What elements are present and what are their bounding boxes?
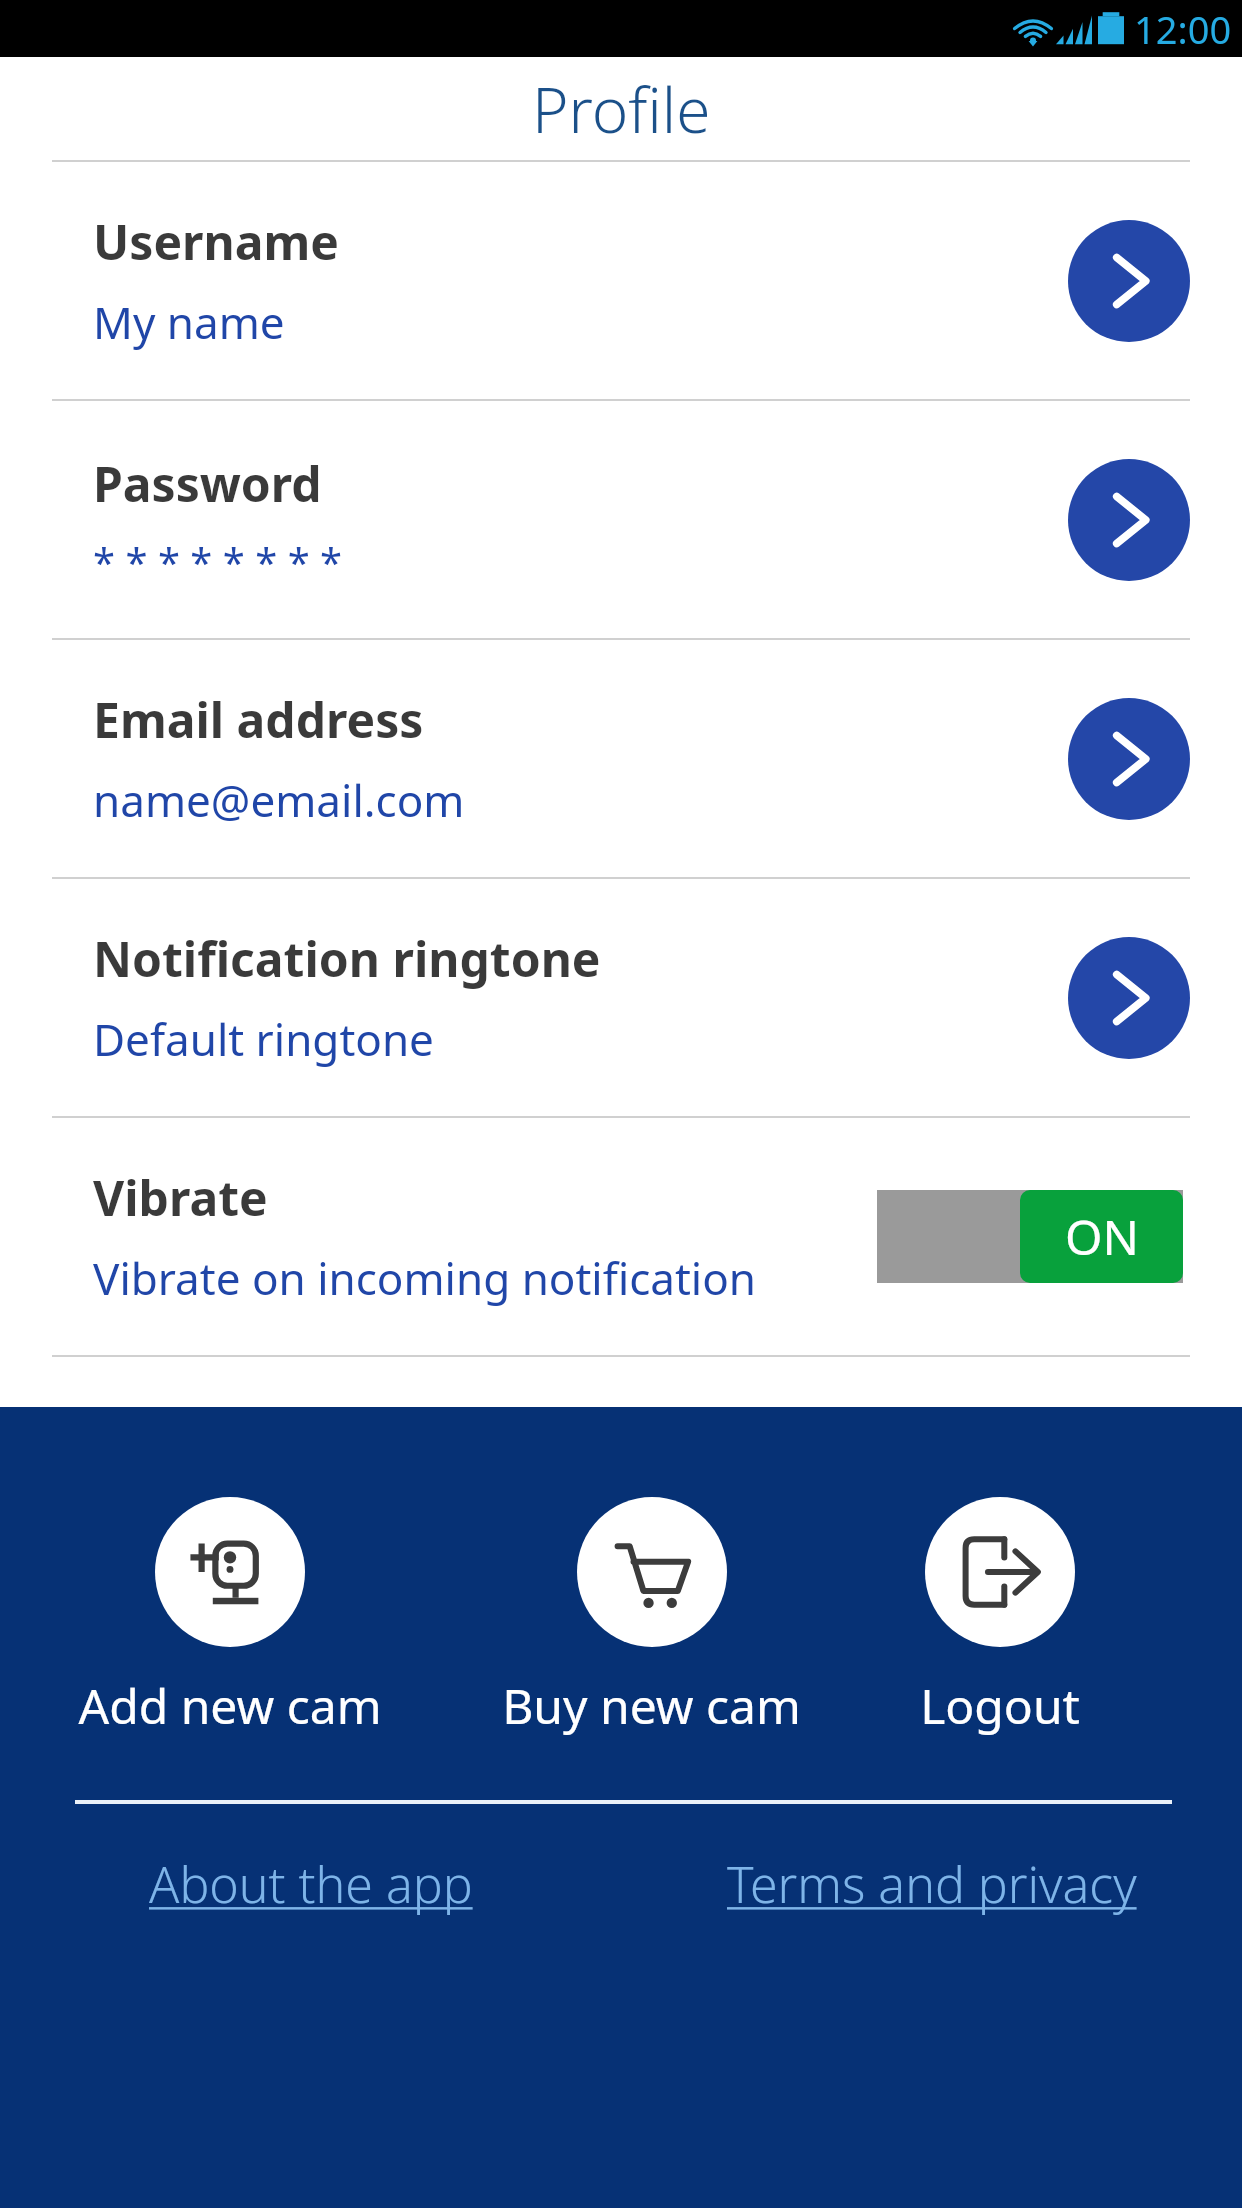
staticText: Logout (920, 1673, 1080, 1738)
staticText: Vibrate (93, 1165, 268, 1230)
staticText: * * * * * * * * (93, 534, 343, 588)
button[interactable]: Edit (1068, 698, 1190, 820)
button[interactable]: Email address (0, 640, 1242, 877)
staticText: Vibrate on incoming notification (93, 1248, 757, 1308)
staticText: My name (93, 292, 285, 352)
staticText: Notification ringtone (93, 926, 601, 991)
staticText: name@email.com (93, 770, 465, 830)
staticText: Default ringtone (93, 1009, 434, 1069)
staticText: Buy new cam (502, 1673, 801, 1738)
button[interactable]: Notification ringtone (0, 879, 1242, 1116)
staticText: Password (93, 451, 322, 516)
staticText: Profile (532, 67, 711, 151)
staticText: 12:00 (1134, 3, 1232, 55)
button[interactable]: Vibrate (0, 1118, 1242, 1355)
button[interactable]: About the app (149, 1850, 473, 1918)
button[interactable]: Edit (1068, 459, 1190, 581)
button[interactable]: Edit (1068, 220, 1190, 342)
staticText: ON (1065, 1204, 1139, 1269)
button[interactable]: Username (0, 162, 1242, 399)
staticText: Username (93, 209, 339, 274)
staticText: Add new cam (78, 1673, 382, 1738)
button[interactable]: Add new cam (66, 1497, 394, 1738)
button[interactable]: Logout (908, 1497, 1092, 1738)
staticText: Email address (93, 687, 424, 752)
button[interactable]: Terms and privacy (727, 1850, 1137, 1918)
button[interactable]: Password (0, 401, 1242, 638)
button[interactable]: Buy new cam (490, 1497, 813, 1738)
button[interactable]: Edit (1068, 937, 1190, 1059)
button[interactable]: Vibrate toggle, on (877, 1190, 1183, 1283)
